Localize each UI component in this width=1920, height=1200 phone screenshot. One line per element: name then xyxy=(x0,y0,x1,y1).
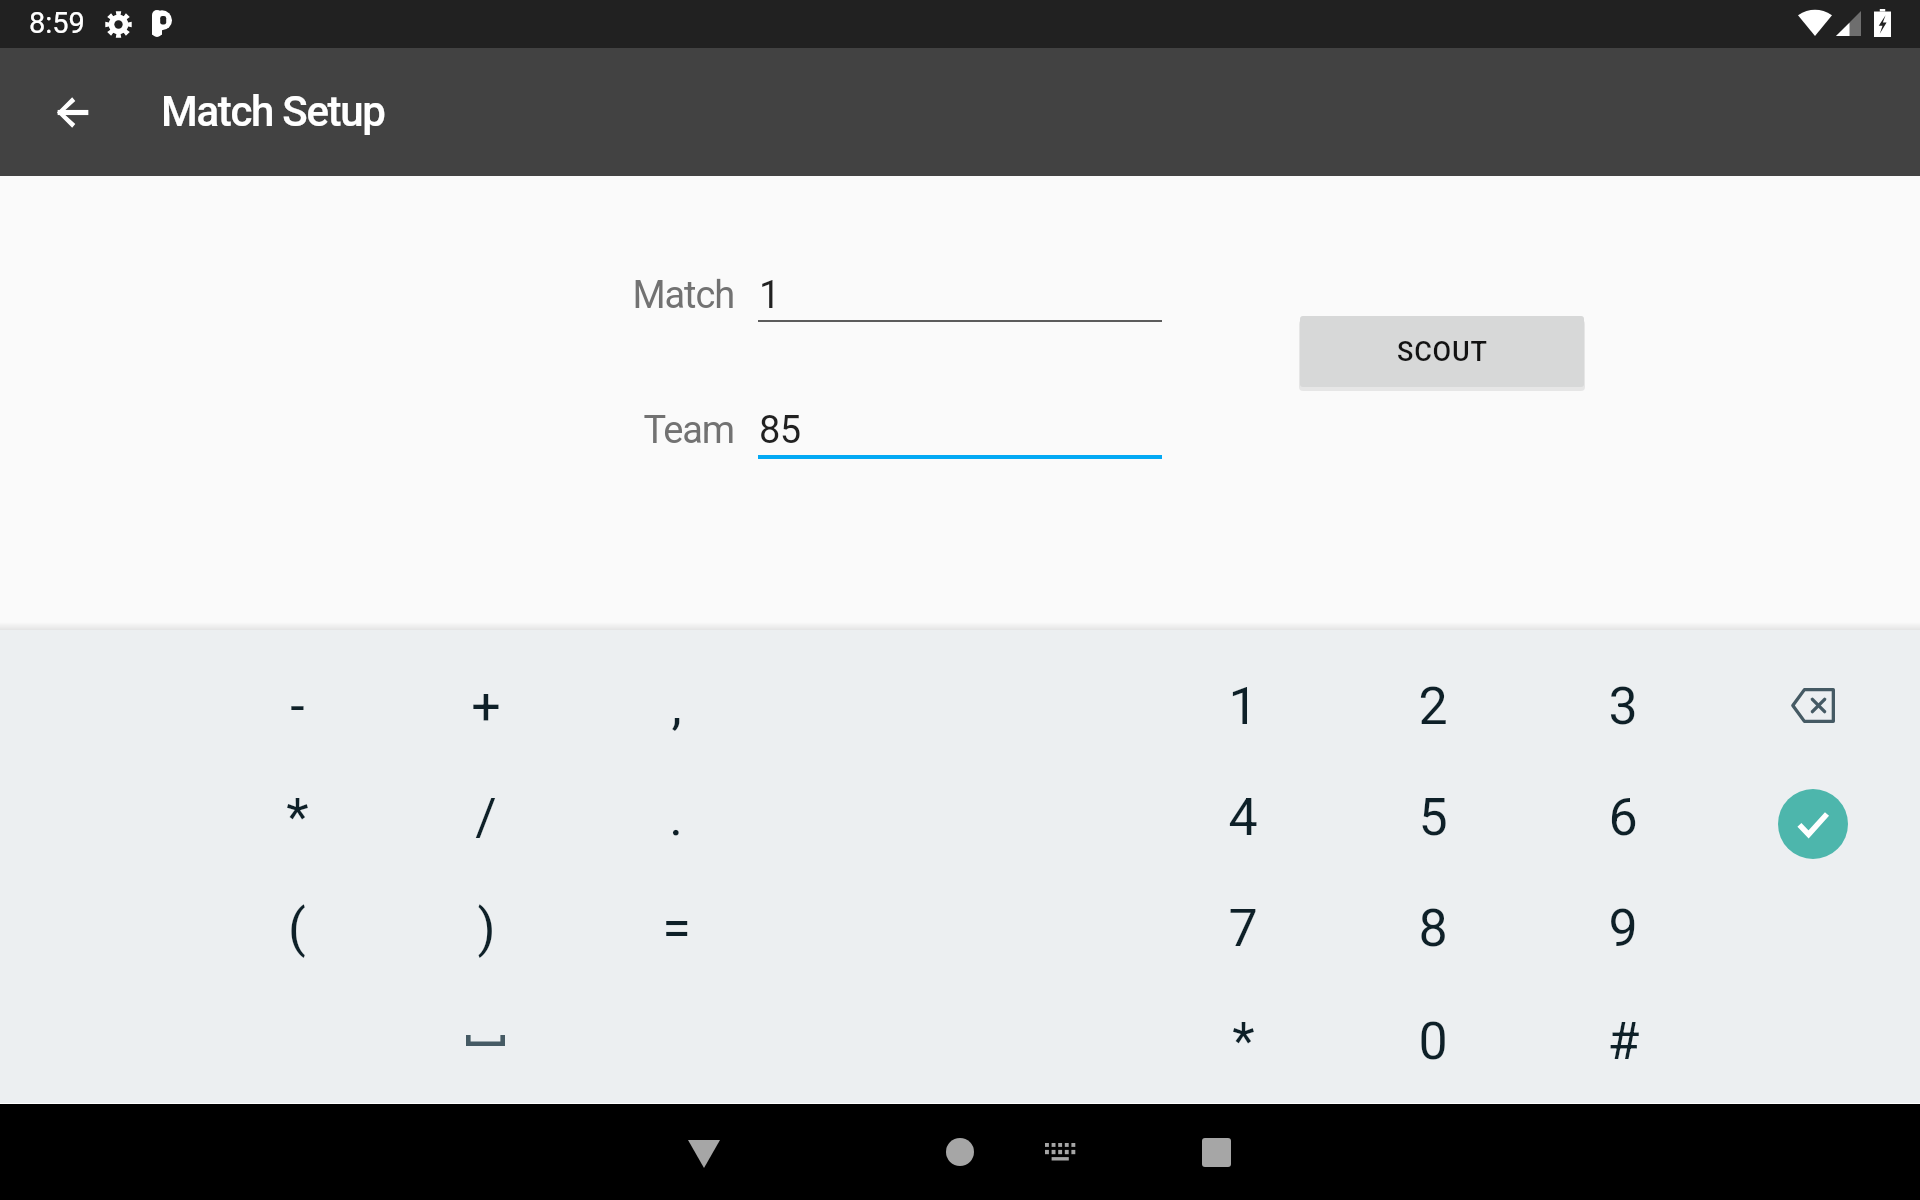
staticText: . xyxy=(669,787,683,848)
staticText: 1 xyxy=(759,273,780,318)
button[interactable]: . xyxy=(616,767,736,867)
button[interactable]: Team field xyxy=(758,408,1162,459)
staticText: 6 xyxy=(1608,787,1638,848)
button[interactable]: = xyxy=(616,878,736,978)
staticText: * xyxy=(286,787,309,848)
staticText: = xyxy=(662,898,691,959)
button[interactable]: 6 xyxy=(1563,767,1683,867)
button[interactable]: Backspace xyxy=(1753,655,1873,755)
staticText: ( xyxy=(288,898,306,959)
button[interactable]: Back xyxy=(660,1104,748,1200)
staticText: 8:59 xyxy=(29,6,85,40)
button[interactable]: Switch keyboard xyxy=(1016,1104,1104,1200)
staticText: Team xyxy=(643,408,734,453)
staticText: 85 xyxy=(759,408,801,453)
staticText: + xyxy=(471,676,501,737)
button[interactable]: 5 xyxy=(1373,767,1493,867)
button[interactable]: + xyxy=(426,656,546,756)
button[interactable]: 7 xyxy=(1183,878,1303,978)
button[interactable]: * xyxy=(237,767,357,867)
staticText: ) xyxy=(477,898,496,959)
button[interactable]: * xyxy=(1183,991,1303,1091)
button[interactable]: 8 xyxy=(1373,878,1493,978)
button[interactable]: 0 xyxy=(1373,991,1493,1091)
staticText: 5 xyxy=(1418,787,1448,848)
staticText: / xyxy=(475,787,497,848)
staticText: Match Setup xyxy=(161,87,385,136)
button[interactable]: SCOUT xyxy=(1300,316,1584,387)
button[interactable]: 3 xyxy=(1563,656,1683,756)
staticText: * xyxy=(1232,1011,1255,1072)
staticText: 2 xyxy=(1418,676,1448,737)
staticText: 9 xyxy=(1608,898,1638,959)
staticText: 3 xyxy=(1608,676,1638,737)
button[interactable]: # xyxy=(1563,991,1683,1091)
button[interactable]: / xyxy=(426,767,546,867)
button[interactable]: 9 xyxy=(1563,878,1683,978)
button[interactable]: Home xyxy=(916,1104,1004,1200)
staticText: 4 xyxy=(1228,787,1258,848)
button[interactable]: Navigate up xyxy=(40,80,104,144)
staticText: - xyxy=(290,676,305,737)
staticText: Match xyxy=(632,273,734,318)
button[interactable]: 4 xyxy=(1183,767,1303,867)
button[interactable]: Enter xyxy=(1778,789,1848,859)
button[interactable]: , xyxy=(616,656,736,756)
staticText: 1 xyxy=(1228,676,1258,737)
staticText: SCOUT xyxy=(1397,336,1488,368)
staticText: , xyxy=(671,676,682,737)
button[interactable]: 1 xyxy=(1183,656,1303,756)
button[interactable]: Recent apps xyxy=(1172,1104,1260,1200)
button[interactable]: - xyxy=(237,656,357,756)
button[interactable]: Match field xyxy=(758,273,1162,322)
staticText: 7 xyxy=(1228,898,1258,959)
button[interactable]: 2 xyxy=(1373,656,1493,756)
button[interactable]: Space xyxy=(425,990,545,1090)
staticText: 0 xyxy=(1418,1011,1448,1072)
staticText: # xyxy=(1607,1011,1640,1072)
button[interactable]: ( xyxy=(237,878,357,978)
button[interactable]: ) xyxy=(426,878,546,978)
staticText: 8 xyxy=(1418,898,1448,959)
